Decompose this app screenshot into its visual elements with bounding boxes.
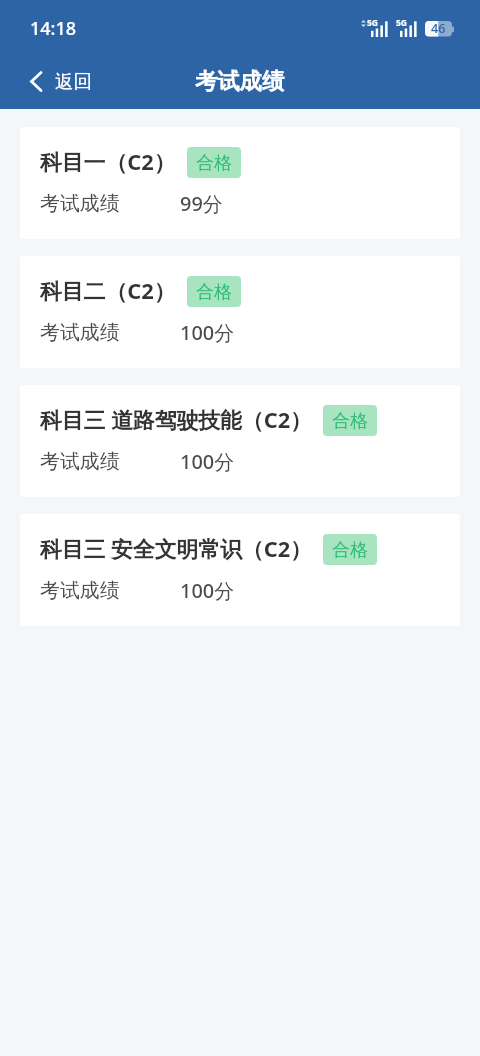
staticText: 考试成绩 [40, 449, 120, 474]
staticText: 科目一（C2） [40, 147, 176, 177]
staticText: 合格 [196, 152, 232, 175]
staticText: 返回 [55, 70, 93, 93]
staticText: 科目二（C2） [40, 276, 176, 306]
button[interactable]: 返回 [0, 62, 109, 101]
staticText: 14:18 [30, 16, 77, 41]
staticText: 考试成绩 [40, 191, 120, 216]
staticText: 46 [431, 20, 446, 36]
staticText: 科目三 安全文明常识（C2） [40, 534, 312, 564]
staticText: 100分 [180, 577, 235, 604]
staticText: 100分 [180, 448, 235, 475]
staticText: 合格 [332, 539, 368, 562]
staticText: 考试成绩 [40, 578, 120, 603]
staticText: 考试成绩 [195, 68, 285, 96]
button[interactable]: 科目一（C2） [20, 127, 460, 239]
button[interactable]: 科目三 安全文明常识（C2） [20, 514, 460, 626]
staticText: 100分 [180, 319, 235, 346]
staticText: 合格 [332, 410, 368, 433]
staticText: 5G [367, 17, 379, 29]
staticText: 考试成绩 [40, 320, 120, 345]
staticText: 99分 [180, 190, 223, 217]
button[interactable]: 科目二（C2） [20, 256, 460, 368]
staticText: 科目三 道路驾驶技能（C2） [40, 405, 312, 435]
staticText: 合格 [196, 281, 232, 304]
staticText: 5G [396, 17, 408, 29]
button[interactable]: 科目三 道路驾驶技能（C2） [20, 385, 460, 497]
